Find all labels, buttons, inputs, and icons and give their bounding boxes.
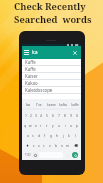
staticText: kafta	[59, 102, 67, 106]
other: Navigation menu	[24, 50, 29, 55]
staticText: m	[66, 143, 70, 147]
button[interactable]: 2	[28, 110, 33, 120]
button[interactable]: v	[47, 140, 53, 150]
button[interactable]: Clear search	[72, 50, 78, 56]
staticText: Check Recently	[14, 0, 86, 13]
button[interactable]: q	[23, 120, 28, 130]
staticText: ka	[32, 49, 38, 56]
button[interactable]: i	[62, 120, 68, 130]
button[interactable]: Kaffe	[22, 59, 81, 66]
staticText: 5	[46, 113, 48, 117]
button[interactable]: 6	[50, 110, 56, 120]
button[interactable]: Shift	[23, 140, 31, 150]
staticText: 0	[76, 113, 78, 117]
staticText: w	[29, 123, 32, 127]
button[interactable]: ?123	[23, 151, 32, 159]
staticText: f	[44, 133, 46, 137]
staticText: j	[63, 133, 64, 137]
button[interactable]: Kaffe	[22, 66, 81, 73]
staticText: 2	[30, 113, 32, 117]
button[interactable]: d	[36, 130, 42, 140]
button[interactable]: z	[31, 140, 36, 150]
button[interactable]: c	[41, 140, 47, 150]
button[interactable]: 9	[68, 110, 74, 120]
button[interactable]: Navigation menu	[22, 46, 81, 59]
staticText: I've	[36, 102, 42, 106]
staticText: y	[52, 123, 54, 127]
button[interactable]: I've	[33, 99, 45, 109]
button[interactable]: kafta	[57, 99, 69, 109]
staticText: z	[33, 143, 35, 147]
staticText: 3	[35, 113, 37, 117]
staticText: Kaffe	[25, 59, 36, 65]
button[interactable]: Kaleidoscope	[22, 87, 81, 94]
staticText: l	[75, 133, 76, 137]
staticText: ka	[26, 102, 30, 106]
button[interactable]: .	[64, 151, 70, 159]
button[interactable]: 4	[38, 110, 44, 120]
button[interactable]: s	[30, 130, 36, 140]
staticText: kaffe	[71, 102, 79, 106]
button[interactable]: h	[54, 130, 60, 140]
staticText: kaeve	[47, 102, 56, 106]
staticText: t	[46, 123, 48, 127]
button[interactable]: f	[42, 130, 48, 140]
button[interactable]: n	[59, 140, 65, 150]
button[interactable]: Kaiser	[22, 73, 81, 80]
staticText: h	[56, 133, 59, 137]
staticText: n	[61, 143, 64, 147]
button[interactable]: 8	[62, 110, 68, 120]
button[interactable]: k	[66, 130, 72, 140]
staticText: Kaiser	[25, 73, 38, 79]
staticText: g	[50, 133, 53, 137]
button[interactable]: 0	[74, 110, 80, 120]
button[interactable]: r	[38, 120, 44, 130]
button[interactable]: u	[56, 120, 62, 130]
staticText: d	[38, 133, 41, 137]
button[interactable]: Backspace	[71, 140, 80, 150]
staticText: Kaleidoscope	[25, 87, 53, 93]
staticText: e	[35, 123, 37, 127]
staticText: 9	[70, 113, 72, 117]
button[interactable]: b	[53, 140, 59, 150]
button[interactable]: t	[44, 120, 50, 130]
button[interactable]: Emoji	[32, 151, 38, 159]
button[interactable]: Kakao	[22, 80, 81, 87]
button[interactable]: l	[72, 130, 78, 140]
button[interactable]: g	[48, 130, 54, 140]
button[interactable]: x	[36, 140, 41, 150]
staticText: q	[24, 123, 27, 127]
button[interactable]: y	[50, 120, 56, 130]
button[interactable]: Search	[72, 152, 78, 158]
button[interactable]: j	[60, 130, 66, 140]
button[interactable]: w	[28, 120, 33, 130]
staticText: i	[65, 123, 66, 127]
staticText: Kakao	[25, 80, 38, 86]
staticText: 6	[52, 113, 54, 117]
button[interactable]: 1	[23, 110, 28, 120]
staticText: u	[58, 123, 61, 127]
button[interactable]: ka	[22, 99, 33, 109]
staticText: 4	[40, 113, 42, 117]
staticText: a	[27, 133, 29, 137]
button[interactable]: 3	[33, 110, 38, 120]
button[interactable]: 5	[44, 110, 50, 120]
button[interactable]: kaeve	[45, 99, 57, 109]
staticText: s	[32, 133, 34, 137]
button[interactable]: p	[74, 120, 80, 130]
staticText: Searched words	[14, 13, 92, 26]
staticText: b	[55, 143, 58, 147]
button[interactable]: a	[25, 130, 30, 140]
staticText: r	[40, 123, 42, 127]
button[interactable]: e	[33, 120, 38, 130]
button[interactable]: o	[68, 120, 74, 130]
staticText: k	[68, 133, 70, 137]
staticText: o	[70, 123, 72, 127]
staticText: c	[43, 143, 45, 147]
button[interactable]: m	[65, 140, 71, 150]
button[interactable]: kaffe	[69, 99, 81, 109]
staticText: .	[67, 153, 68, 158]
button[interactable]: 7	[56, 110, 62, 120]
staticText: 8	[64, 113, 66, 117]
